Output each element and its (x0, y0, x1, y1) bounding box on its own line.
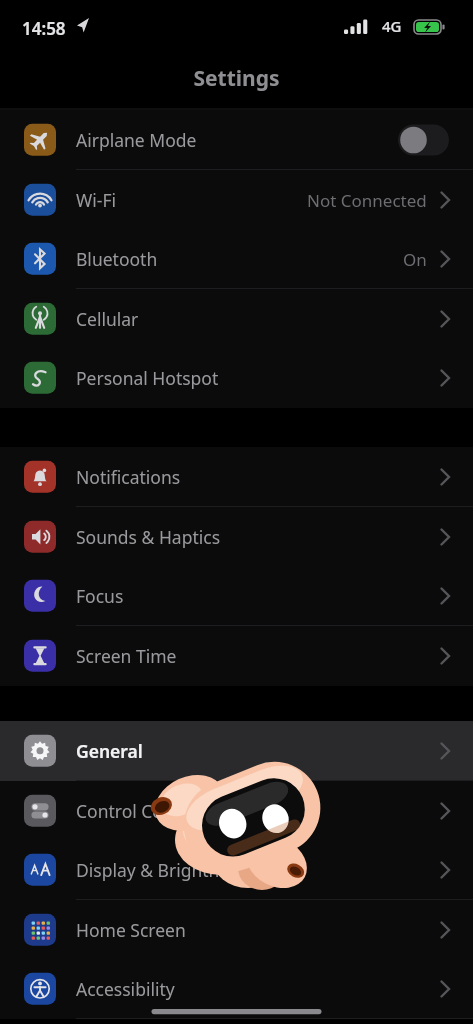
staticText: Personal Hotspot (76, 366, 219, 390)
button[interactable]: General (0, 721, 473, 781)
staticText: Screen Time (76, 644, 177, 668)
staticText: Focus (76, 584, 124, 608)
staticText: Accessibility (76, 977, 175, 1001)
staticText: Control Center (76, 799, 197, 823)
staticText: Home Screen (76, 918, 186, 942)
button[interactable]: Control Center (0, 781, 473, 841)
staticText: Airplane Mode (76, 128, 197, 152)
button[interactable]: Screen Time (0, 626, 473, 686)
staticText: On (403, 248, 427, 271)
button[interactable]: Wi-Fi (0, 170, 473, 230)
staticText: Settings (0, 64, 473, 93)
button[interactable]: Home Screen (0, 900, 473, 960)
button[interactable]: Sounds & Haptics (0, 507, 473, 567)
staticText: Display & Brightness (76, 858, 247, 882)
staticText: Notifications (76, 465, 181, 489)
staticText: Bluetooth (76, 247, 158, 271)
staticText: Not Connected (307, 189, 427, 212)
staticText: Wi-Fi (76, 188, 117, 212)
staticText: General (76, 739, 143, 763)
staticText: 14:58 (22, 17, 66, 40)
staticText: Cellular (76, 307, 139, 331)
staticText: 4G (382, 16, 402, 36)
staticText: Sounds & Haptics (76, 525, 221, 549)
button[interactable]: Bluetooth (0, 229, 473, 289)
button[interactable]: Focus (0, 566, 473, 626)
button[interactable]: Accessibility (0, 959, 473, 1019)
button[interactable]: Airplane Mode (0, 110, 473, 170)
button[interactable]: Personal Hotspot (0, 348, 473, 408)
button[interactable]: Notifications (0, 447, 473, 507)
button[interactable]: Display & Brightness (0, 840, 473, 900)
button[interactable]: Cellular (0, 289, 473, 349)
